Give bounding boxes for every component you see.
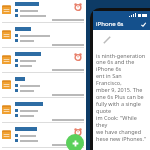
staticText: iPhone 6s <box>96 20 124 28</box>
button[interactable] <box>0 75 86 100</box>
button[interactable]: Add <box>66 134 84 150</box>
button[interactable]: Done <box>140 21 147 28</box>
button[interactable] <box>0 50 86 75</box>
button[interactable] <box>0 125 86 150</box>
button[interactable] <box>0 100 86 125</box>
staticText: is ninth-generation one 6s and the iPhon… <box>96 52 147 143</box>
button[interactable] <box>0 0 86 25</box>
button[interactable] <box>0 25 86 50</box>
